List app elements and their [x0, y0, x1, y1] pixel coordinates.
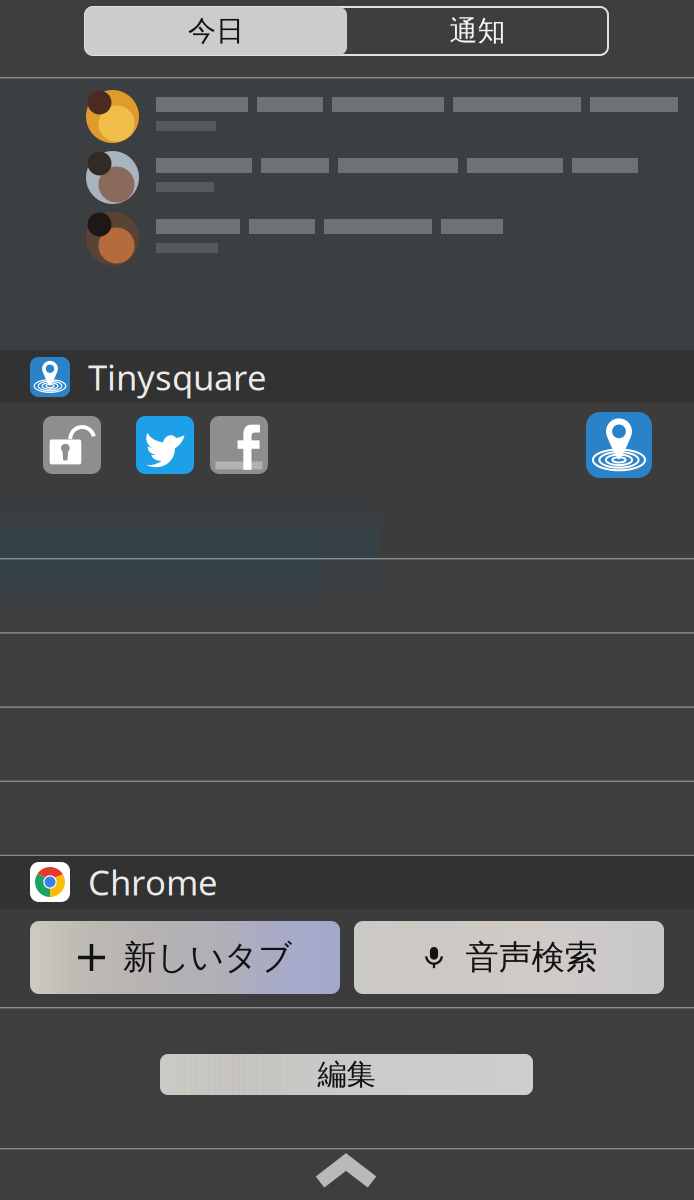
staticText: Chrome [88, 859, 218, 905]
button[interactable]: 音声検索 [354, 921, 664, 994]
staticText: 編集 [317, 1056, 375, 1092]
button[interactable]: Facebook [210, 416, 268, 474]
button[interactable]: Unlock [43, 416, 101, 474]
button[interactable]: 編集 [160, 1054, 533, 1095]
staticText: 新しいタブ [123, 937, 292, 978]
button[interactable]: 今日 [85, 7, 347, 55]
staticText: 音声検索 [465, 937, 597, 978]
staticText: 通知 [449, 14, 505, 48]
button[interactable]: 新しいタブ [30, 921, 340, 994]
button[interactable]: Tinysquare [586, 412, 652, 478]
staticText: Tinysquare [88, 354, 267, 400]
staticText: 今日 [188, 14, 244, 48]
button[interactable]: 通知 [347, 7, 608, 55]
button[interactable]: Twitter [136, 416, 194, 474]
